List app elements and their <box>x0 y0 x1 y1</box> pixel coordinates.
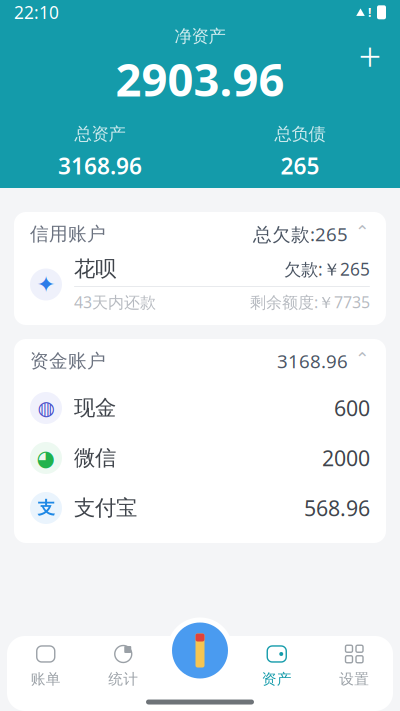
button[interactable]: 记一笔 <box>165 615 235 685</box>
staticText: 支 <box>37 497 54 519</box>
staticText: 现金 <box>74 395 116 421</box>
staticText: 总欠款:265 <box>253 222 348 246</box>
button[interactable]: 添加账户 <box>348 34 392 78</box>
staticText: ⌃ <box>355 222 370 242</box>
button[interactable]: 统计 <box>84 639 162 691</box>
staticText: 2903.96 <box>115 49 284 109</box>
button[interactable]: 信用账户 <box>14 212 386 256</box>
staticText: 净资产 <box>174 26 225 47</box>
staticText: 欠款:￥265 <box>284 257 370 280</box>
staticText: 资金账户 <box>30 349 106 372</box>
staticText: 花呗 <box>74 256 116 282</box>
button[interactable]: 账单 <box>7 639 84 691</box>
staticText: 3168.96 <box>58 151 142 181</box>
staticText: 资产 <box>262 670 292 688</box>
staticText: 600 <box>334 394 370 422</box>
staticText: 568.96 <box>304 494 370 522</box>
staticText: ! <box>368 4 371 20</box>
staticText: 支付宝 <box>74 495 137 521</box>
staticText: 信用账户 <box>30 222 106 245</box>
button[interactable]: 资产 <box>238 639 315 691</box>
staticText: 总资产 <box>74 123 125 145</box>
staticText: 3168.96 <box>277 349 348 373</box>
button[interactable]: 设置 <box>315 639 393 691</box>
button[interactable]: ◕ <box>14 433 386 483</box>
staticText: 265 <box>280 151 319 181</box>
staticText: 43天内还款 <box>74 291 156 313</box>
staticText: 22:10 <box>14 1 59 24</box>
button[interactable]: 资金账户 <box>14 339 386 383</box>
staticText: + <box>358 30 381 83</box>
button[interactable]: ✦ <box>14 256 386 325</box>
staticText: 剩余额度:￥7735 <box>250 291 370 313</box>
staticText: ◍ <box>37 397 54 419</box>
staticText: ◕ <box>36 446 55 470</box>
staticText: 微信 <box>74 445 116 471</box>
button[interactable]: 支 <box>14 483 386 533</box>
staticText: 2000 <box>322 444 370 472</box>
staticText: 设置 <box>339 670 369 688</box>
staticText: 统计 <box>108 670 138 688</box>
staticText: 账单 <box>31 670 61 688</box>
staticText: ⌃ <box>355 349 370 369</box>
staticText: 总负债 <box>274 123 325 145</box>
button[interactable]: ◍ <box>14 383 386 433</box>
staticText: ✦ <box>36 272 55 297</box>
